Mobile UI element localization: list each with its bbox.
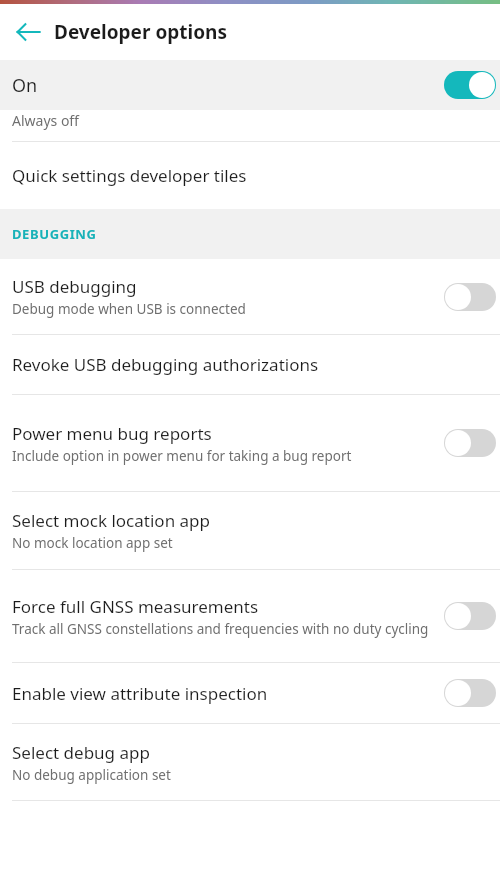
- button[interactable]: Toggle on: [442, 65, 498, 105]
- staticText: Power menu bug reports: [12, 422, 212, 445]
- button[interactable]: Toggle off: [442, 596, 498, 636]
- button[interactable]: Force full GNSS measurements: [0, 570, 500, 662]
- button[interactable]: Quick settings developer tiles: [0, 142, 500, 209]
- staticText: Debug mode when USB is connected: [12, 300, 246, 318]
- button[interactable]: Toggle off: [442, 277, 498, 317]
- button[interactable]: Revoke USB debugging authorizations: [0, 335, 500, 394]
- button[interactable]: Back: [6, 10, 50, 54]
- staticText: On: [12, 73, 442, 98]
- staticText: Enable view attribute inspection: [12, 682, 268, 705]
- staticText: Always off: [12, 111, 80, 130]
- button[interactable]: USB debugging: [0, 259, 500, 334]
- staticText: No mock location app set: [12, 534, 173, 552]
- button[interactable]: On: [0, 60, 500, 110]
- button[interactable]: Enable view attribute inspection: [0, 663, 500, 723]
- staticText: Select debug app: [12, 741, 150, 764]
- button[interactable]: Power menu bug reports: [0, 395, 500, 491]
- staticText: No debug application set: [12, 766, 171, 784]
- staticText: Force full GNSS measurements: [12, 595, 259, 618]
- button[interactable]: Select debug app: [0, 724, 500, 800]
- button[interactable]: Toggle off: [442, 423, 498, 463]
- staticText: Track all GNSS constellations and freque…: [12, 620, 429, 638]
- staticText: Quick settings developer tiles: [12, 164, 247, 187]
- staticText: Revoke USB debugging authorizations: [12, 353, 319, 376]
- button[interactable]: Toggle off: [442, 673, 498, 713]
- staticText: DEBUGGING: [12, 225, 97, 243]
- button[interactable]: Select mock location app: [0, 492, 500, 569]
- staticText: Include option in power menu for taking …: [12, 447, 352, 465]
- staticText: USB debugging: [12, 275, 137, 298]
- staticText: Developer options: [54, 19, 227, 45]
- button[interactable]: Always off: [0, 110, 500, 141]
- staticText: Select mock location app: [12, 509, 210, 532]
